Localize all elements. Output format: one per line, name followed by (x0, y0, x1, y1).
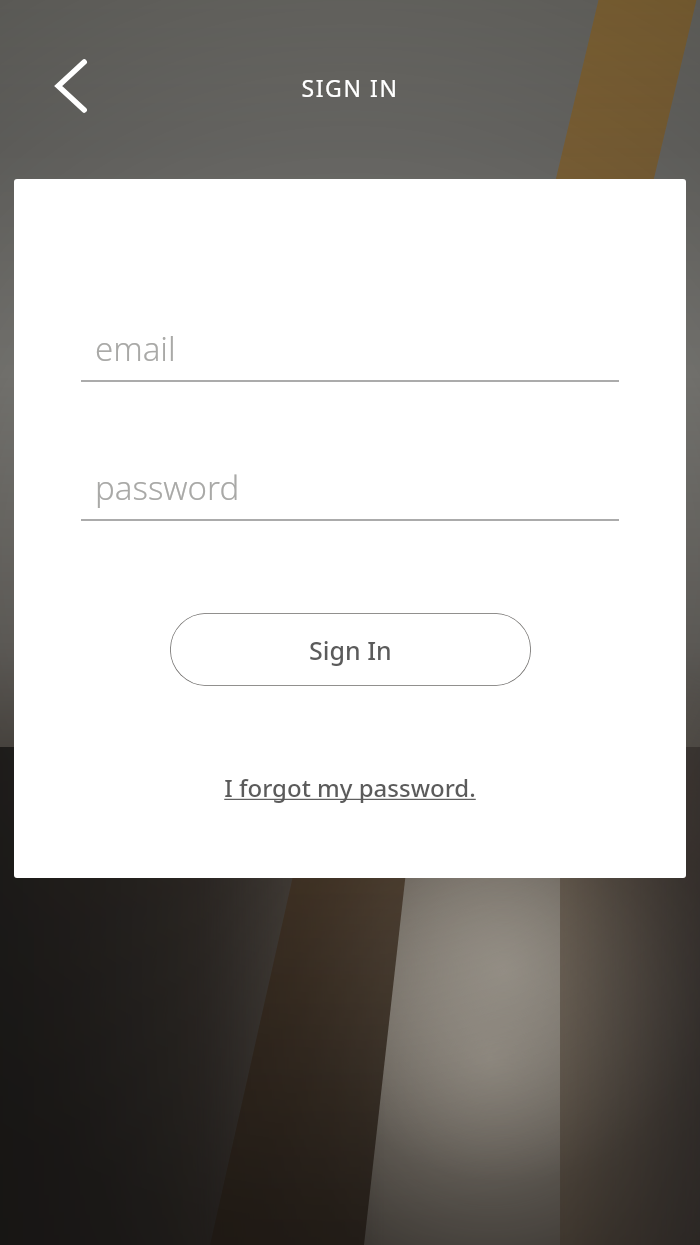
button[interactable]: email (81, 320, 619, 382)
staticText: SIGN IN (0, 72, 700, 103)
staticText: password (95, 465, 240, 510)
staticText: Sign In (309, 633, 392, 667)
button[interactable]: password (81, 459, 619, 521)
button[interactable]: Sign In (170, 613, 531, 686)
staticText: I forgot my password. (224, 771, 476, 804)
button[interactable]: I forgot my password. (14, 764, 686, 810)
button[interactable]: Back (40, 56, 100, 116)
staticText: email (95, 326, 176, 371)
